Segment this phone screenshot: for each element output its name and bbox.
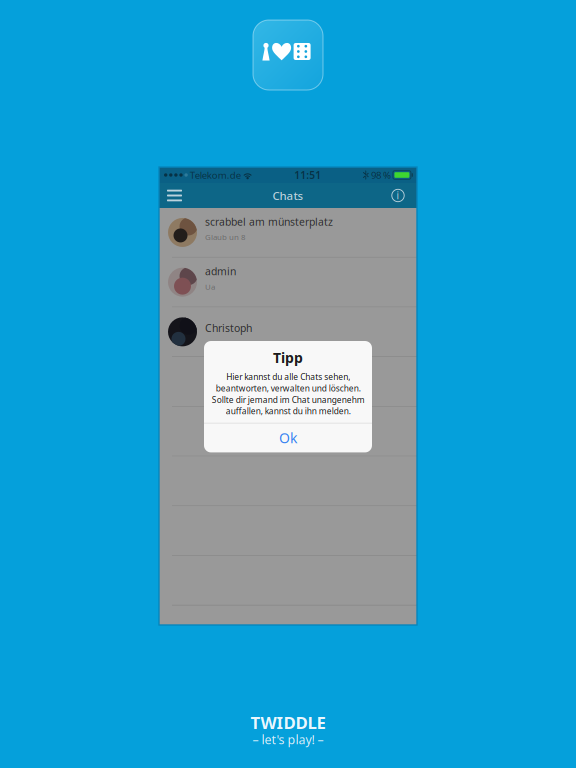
staticText: Christoph xyxy=(205,321,252,335)
button[interactable]: scrabbel am münsterplatz xyxy=(159,208,417,258)
staticText: Chats xyxy=(272,188,303,203)
button[interactable]: admin xyxy=(159,258,417,307)
staticText: i xyxy=(396,189,399,202)
staticText: Ua xyxy=(205,281,215,292)
staticText: TWIDDLE xyxy=(250,711,325,734)
button[interactable]: Christoph xyxy=(159,307,417,357)
staticText: Ok xyxy=(279,428,297,447)
staticText: 98 % xyxy=(369,168,393,182)
staticText: admin xyxy=(205,264,236,278)
staticText: Telekom.de xyxy=(188,168,243,182)
button[interactable]: Info xyxy=(384,183,417,208)
staticText: Glaub un 8 xyxy=(205,232,246,242)
staticText: 11:51 xyxy=(294,168,321,182)
button[interactable]: Ok xyxy=(204,423,372,452)
staticText: Tipp xyxy=(273,348,303,367)
staticText: – let's play! – xyxy=(252,731,323,748)
staticText: scrabbel am münsterplatz xyxy=(205,214,333,229)
staticText: Hier kannst du alle Chats sehen, beantwo… xyxy=(211,371,364,417)
button[interactable]: Menu xyxy=(159,183,199,208)
